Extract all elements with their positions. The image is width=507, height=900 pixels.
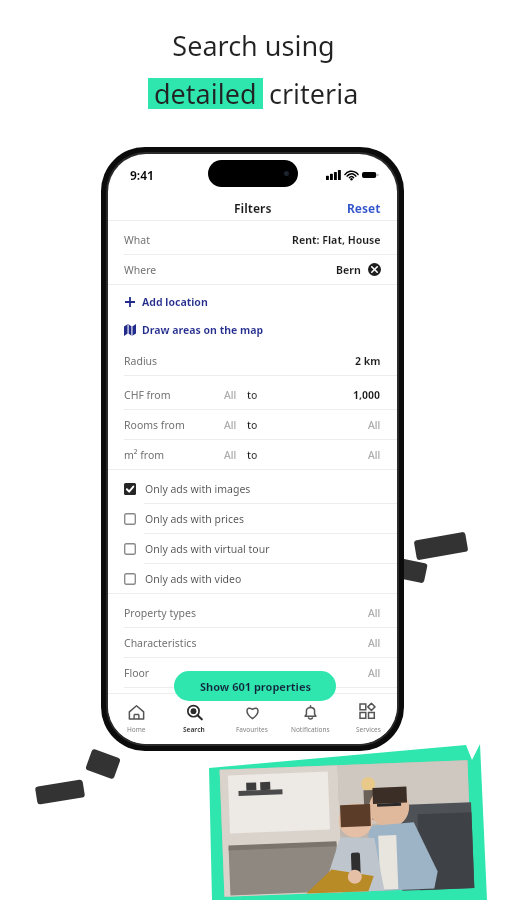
- button[interactable]: Home: [108, 694, 165, 744]
- button[interactable]: Radius: [108, 346, 397, 375]
- staticText: Search using: [0, 27, 507, 64]
- button[interactable]: Draw areas on the map: [108, 316, 397, 344]
- staticText: Where: [124, 263, 157, 277]
- button[interactable]: m² from: [108, 440, 397, 469]
- staticText: Favourites: [236, 725, 268, 734]
- staticText: Only ads with virtual tour: [145, 542, 270, 556]
- staticText: Home: [127, 725, 146, 734]
- staticText: Characteristics: [124, 636, 197, 650]
- button[interactable]: Services: [339, 694, 397, 744]
- button[interactable]: Property types: [108, 598, 397, 627]
- button[interactable]: Favourites: [223, 694, 281, 744]
- staticText: Notifications: [291, 725, 330, 734]
- staticText: All: [224, 418, 237, 432]
- staticText: Search: [183, 725, 205, 734]
- staticText: Rooms from: [124, 418, 185, 432]
- staticText: Services: [356, 725, 381, 734]
- staticText: All: [224, 448, 237, 462]
- staticText: All: [368, 418, 381, 432]
- staticText: criteria: [269, 75, 359, 112]
- staticText: m² from: [124, 448, 165, 462]
- staticText: Floor: [124, 666, 150, 680]
- staticText: CHF from: [124, 388, 171, 402]
- staticText: All: [224, 388, 237, 402]
- staticText: to: [247, 448, 258, 462]
- staticText: Property types: [124, 606, 196, 620]
- staticText: Only ads with prices: [145, 512, 245, 526]
- button[interactable]: Where: [108, 255, 397, 284]
- staticText: detailed: [154, 75, 257, 112]
- staticText: Rent: Flat, House: [292, 233, 381, 247]
- button[interactable]: Show 601 properties: [174, 671, 336, 701]
- staticText: Add location: [142, 295, 208, 309]
- button[interactable]: Add location: [108, 288, 397, 316]
- staticText: Radius: [124, 354, 158, 368]
- button[interactable]: Clear location: [368, 263, 381, 276]
- button[interactable]: Reset: [331, 197, 397, 219]
- staticText: to: [247, 388, 258, 402]
- staticText: 9:41: [130, 167, 154, 183]
- staticText: 2 km: [355, 354, 381, 368]
- staticText: to: [247, 418, 258, 432]
- staticText: Only ads with video: [145, 572, 242, 586]
- staticText: Draw areas on the map: [142, 323, 264, 337]
- staticText: All: [368, 666, 381, 680]
- staticText: Show 601 properties: [200, 679, 311, 694]
- button[interactable]: Search: [165, 694, 223, 744]
- staticText: Filters: [234, 200, 272, 216]
- button[interactable]: Only ads with prices: [108, 504, 397, 533]
- staticText: Reset: [347, 200, 381, 216]
- staticText: Bern: [336, 263, 361, 277]
- button[interactable]: Notifications: [281, 694, 339, 744]
- staticText: Only ads with images: [145, 482, 251, 496]
- staticText: What: [124, 233, 150, 247]
- button[interactable]: Rooms from: [108, 410, 397, 439]
- button[interactable]: Only ads with images: [108, 474, 397, 503]
- staticText: All: [368, 636, 381, 650]
- button[interactable]: Only ads with virtual tour: [108, 534, 397, 563]
- button[interactable]: Characteristics: [108, 628, 397, 657]
- button[interactable]: What: [108, 225, 397, 254]
- button[interactable]: CHF from: [108, 380, 397, 409]
- staticText: All: [368, 606, 381, 620]
- staticText: 1,000: [353, 388, 381, 402]
- staticText: All: [368, 448, 381, 462]
- button[interactable]: Only ads with video: [108, 564, 397, 593]
- button[interactable]: Floor: [108, 658, 397, 687]
